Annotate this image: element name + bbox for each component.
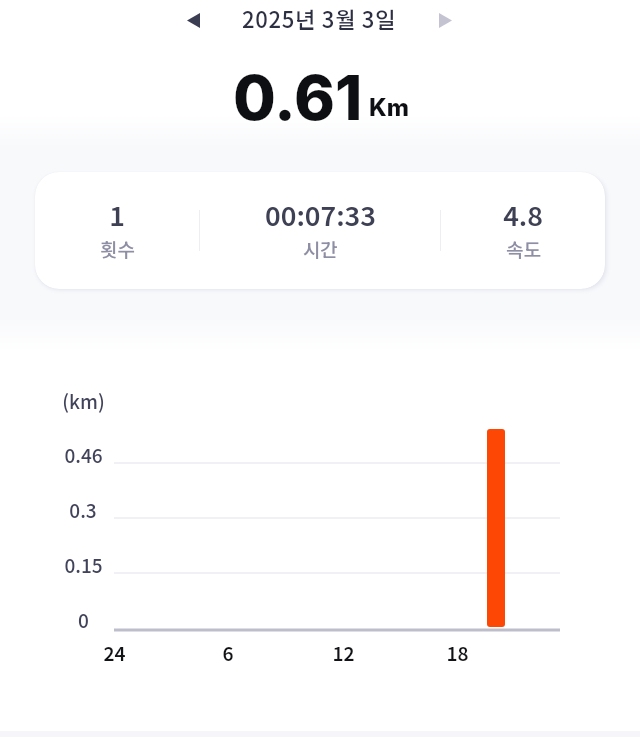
staticText: 0.46	[64, 441, 103, 469]
button[interactable]: Next day	[424, 4, 466, 36]
staticText: 속도	[506, 235, 541, 263]
staticText: (km)	[62, 387, 105, 415]
staticText: 6	[222, 639, 234, 667]
staticText: Km	[369, 93, 409, 122]
button[interactable]: 4.8	[441, 197, 605, 265]
staticText: 4.8	[503, 195, 543, 234]
staticText: 0	[78, 606, 89, 634]
staticText: 1	[109, 195, 125, 234]
staticText: 2025년 3월 3일	[242, 2, 397, 34]
staticText: 시간	[303, 235, 338, 263]
staticText: 24	[103, 639, 126, 667]
staticText: 18	[446, 639, 469, 667]
staticText: 0.15	[64, 551, 103, 579]
button[interactable]: 00:07:33	[200, 197, 440, 265]
staticText: 0.61	[233, 60, 363, 135]
staticText: 12	[332, 639, 355, 667]
staticText: 00:07:33	[265, 195, 376, 234]
staticText: 횟수	[100, 235, 135, 263]
button[interactable]: 1	[35, 197, 199, 265]
staticText: 0.3	[69, 496, 97, 524]
button[interactable]: Previous day	[172, 4, 214, 36]
